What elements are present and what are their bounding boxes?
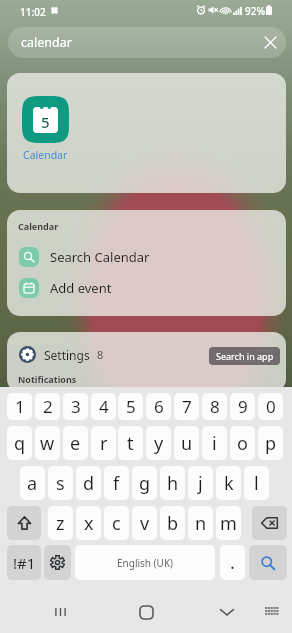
button[interactable]: Shift: [7, 506, 41, 540]
staticText: 3: [71, 395, 81, 418]
staticText: 8: [97, 347, 104, 362]
staticText: Search Calendar: [50, 248, 150, 266]
button[interactable]: c: [104, 506, 129, 540]
staticText: p: [265, 431, 277, 456]
staticText: x: [84, 511, 94, 536]
button[interactable]: j: [188, 466, 213, 500]
staticText: y: [154, 431, 164, 456]
button[interactable]: u: [174, 426, 199, 460]
button[interactable]: 2: [35, 393, 60, 420]
button[interactable]: 1: [7, 393, 32, 420]
button[interactable]: Symbols: [7, 545, 41, 580]
staticText: v: [140, 511, 150, 536]
button[interactable]: z: [48, 506, 73, 540]
button[interactable]: a: [20, 466, 45, 500]
staticText: 6: [154, 395, 164, 418]
button[interactable]: 8: [202, 393, 227, 420]
staticText: Add event: [50, 279, 112, 297]
button[interactable]: 5: [118, 393, 143, 420]
staticText: 9: [238, 395, 248, 418]
button[interactable]: b: [160, 506, 185, 540]
button[interactable]: y: [146, 426, 171, 460]
button[interactable]: n: [188, 506, 213, 540]
button[interactable]: Hide keyboard: [254, 591, 290, 633]
staticText: 92%: [245, 4, 265, 18]
button[interactable]: English (UK): [75, 545, 215, 580]
button[interactable]: q: [7, 426, 32, 460]
staticText: 7: [182, 395, 192, 418]
staticText: u: [181, 431, 193, 456]
staticText: Search in app: [216, 350, 274, 362]
staticText: j: [198, 471, 203, 496]
staticText: 2: [43, 395, 53, 418]
button[interactable]: Home: [124, 591, 168, 633]
button[interactable]: v: [132, 506, 157, 540]
staticText: 0: [266, 395, 276, 418]
staticText: 4: [99, 395, 109, 418]
staticText: Calendar: [18, 220, 59, 232]
button[interactable]: .: [220, 545, 245, 580]
staticText: c: [112, 511, 121, 536]
staticText: 8: [210, 395, 220, 418]
button[interactable]: x: [76, 506, 101, 540]
button[interactable]: f: [104, 466, 129, 500]
button[interactable]: Add event: [7, 272, 286, 303]
button[interactable]: Settings: [7, 332, 286, 377]
staticText: !#1: [13, 553, 36, 573]
button[interactable]: o: [230, 426, 255, 460]
staticText: o: [237, 431, 248, 456]
button[interactable]: 4: [91, 393, 116, 420]
staticText: k: [224, 471, 234, 496]
button[interactable]: 9: [230, 393, 255, 420]
staticText: 5: [126, 395, 136, 418]
staticText: h: [167, 471, 179, 496]
staticText: q: [14, 431, 26, 456]
button[interactable]: calendar: [8, 27, 286, 58]
button[interactable]: e: [63, 426, 88, 460]
button[interactable]: h: [160, 466, 185, 500]
staticText: calendar: [21, 34, 254, 51]
staticText: 1: [15, 395, 25, 418]
staticText: Calendar: [23, 148, 68, 162]
button[interactable]: t: [118, 426, 143, 460]
button[interactable]: Search Calendar: [7, 241, 286, 272]
staticText: z: [56, 511, 65, 536]
staticText: e: [70, 431, 81, 456]
staticText: w: [40, 431, 55, 456]
button[interactable]: Back: [205, 591, 249, 633]
button[interactable]: 0: [258, 393, 283, 420]
button[interactable]: Recent apps: [38, 591, 82, 633]
button[interactable]: p: [258, 426, 283, 460]
staticText: .: [230, 550, 235, 575]
staticText: 5: [41, 112, 50, 132]
button[interactable]: Keyboard settings: [44, 545, 71, 580]
button[interactable]: m: [216, 506, 241, 540]
button[interactable]: k: [216, 466, 241, 500]
staticText: n: [195, 511, 207, 536]
button[interactable]: d: [76, 466, 101, 500]
staticText: t: [127, 431, 134, 456]
staticText: English (UK): [117, 556, 174, 570]
button[interactable]: 5: [7, 96, 83, 162]
staticText: d: [83, 471, 95, 496]
button[interactable]: i: [202, 426, 227, 460]
staticText: g: [139, 471, 151, 496]
button[interactable]: w: [35, 426, 60, 460]
staticText: 11:02: [20, 5, 46, 19]
button[interactable]: 6: [146, 393, 171, 420]
button[interactable]: Search in app: [209, 347, 280, 365]
staticText: f: [113, 471, 120, 496]
button[interactable]: Search: [249, 545, 287, 580]
staticText: s: [56, 471, 65, 496]
button[interactable]: Clear search: [254, 27, 286, 58]
staticText: m: [220, 511, 237, 536]
staticText: a: [27, 471, 38, 496]
button[interactable]: 7: [174, 393, 199, 420]
button[interactable]: r: [91, 426, 116, 460]
staticText: b: [167, 511, 179, 536]
button[interactable]: l: [244, 466, 269, 500]
button[interactable]: s: [48, 466, 73, 500]
button[interactable]: g: [132, 466, 157, 500]
button[interactable]: Backspace: [252, 506, 287, 540]
button[interactable]: 3: [63, 393, 88, 420]
